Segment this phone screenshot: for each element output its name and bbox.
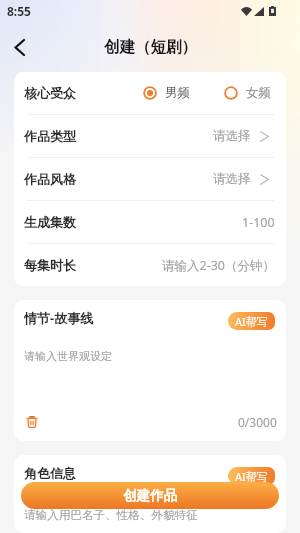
staticText: AI帮写 [235,314,268,329]
staticText: 情节-故事线 [24,309,94,327]
staticText: 0/3000 [238,414,277,430]
staticText: 核心受众 [24,85,76,101]
button[interactable]: Delete [27,413,45,431]
staticText: 8:55 [7,3,31,19]
staticText: 请输入2-30（分钟） [162,257,275,274]
button[interactable]: Back [0,27,38,67]
staticText: 男频 [165,85,190,101]
staticText: 请选择 [213,171,251,187]
staticText: 创建作品 [123,487,177,504]
button[interactable]: 创建作品 [21,482,279,509]
staticText: 1-100 [242,214,275,231]
staticText: 每集时长 [24,257,76,273]
staticText: 作品风格 [24,171,76,187]
staticText: 请选择 [213,128,251,144]
button[interactable]: AI帮写 [228,312,275,330]
staticText: 请输入世界观设定 [24,349,112,363]
staticText: 生成集数 [24,214,76,230]
button[interactable]: AI帮写 [228,467,275,485]
staticText: AI帮写 [235,469,268,484]
staticText: 女频 [246,85,271,101]
staticText: 作品类型 [24,128,76,144]
staticText: 请输入用巴名子、性格、外貌特征 [24,508,198,523]
button[interactable]: 男频 [143,85,190,101]
button[interactable]: 女频 [224,85,271,101]
button[interactable]: 生成集数 [14,201,286,243]
button[interactable]: 每集时长 [14,244,286,286]
button[interactable]: 作品类型 [14,115,286,157]
staticText: 角色信息 [24,465,76,481]
button[interactable]: 作品风格 [14,158,286,200]
staticText: 创建（短剧） [104,37,197,57]
